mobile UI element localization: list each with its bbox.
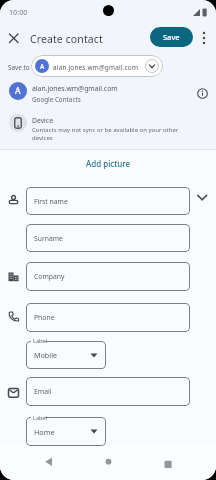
- staticText: Google Contacts: [32, 95, 81, 104]
- button[interactable]: Surname: [26, 224, 190, 252]
- button[interactable]: Home: [26, 417, 106, 446]
- staticText: Home: [34, 427, 55, 437]
- button[interactable]: First name: [26, 187, 190, 215]
- button[interactable]: [156, 452, 180, 474]
- button[interactable]: Save: [150, 27, 193, 47]
- staticText: A: [40, 62, 45, 71]
- button[interactable]: [5, 30, 23, 47]
- button[interactable]: A: [0, 80, 216, 106]
- staticText: Company: [34, 272, 65, 281]
- staticText: First name: [34, 197, 68, 206]
- staticText: alan.jones.wm@gmail.com: [32, 84, 118, 93]
- staticText: Label: [33, 414, 47, 421]
- staticText: Surname: [34, 234, 63, 243]
- button[interactable]: Company: [26, 262, 190, 291]
- staticText: Save to: [8, 63, 30, 72]
- staticText: alan.jones.wm@gmail.com: [53, 63, 139, 72]
- staticText: Phone: [34, 313, 55, 322]
- button[interactable]: Phone: [26, 303, 190, 332]
- button[interactable]: A: [31, 55, 163, 77]
- button[interactable]: [36, 452, 60, 474]
- staticText: Device: [32, 116, 53, 125]
- staticText: 10:00: [9, 7, 28, 17]
- button[interactable]: [97, 452, 121, 474]
- button[interactable]: [196, 193, 208, 203]
- staticText: Label: [33, 337, 47, 344]
- staticText: Create contact: [30, 32, 103, 46]
- staticText: devices: [32, 134, 53, 142]
- button[interactable]: Email: [26, 377, 190, 406]
- staticText: Email: [34, 387, 52, 396]
- staticText: Mobile: [34, 350, 58, 360]
- staticText: Add picture: [86, 158, 131, 169]
- button[interactable]: Add picture: [78, 156, 138, 170]
- button[interactable]: Device: [0, 112, 216, 144]
- button[interactable]: [198, 30, 210, 47]
- staticText: Save: [163, 32, 180, 42]
- button[interactable]: Mobile: [26, 341, 106, 369]
- staticText: Contacts may not sync or be available on…: [32, 126, 179, 134]
- staticText: A: [15, 85, 21, 97]
